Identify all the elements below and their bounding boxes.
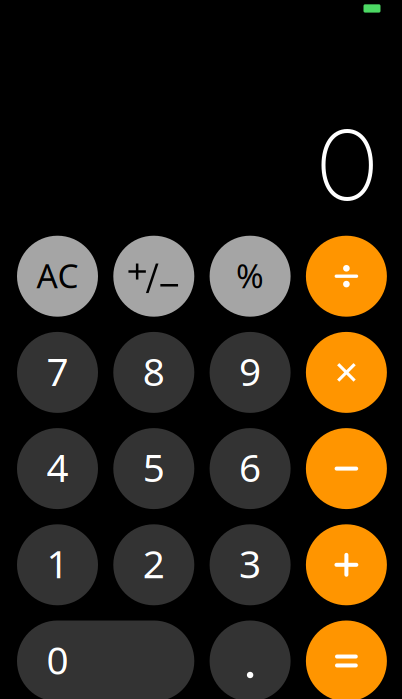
button[interactable]: Multiply xyxy=(306,332,387,413)
staticText: 0 xyxy=(46,634,68,685)
button[interactable]: 3 xyxy=(210,524,291,605)
button[interactable]: Minus xyxy=(306,428,387,509)
button[interactable]: 8 xyxy=(113,332,194,413)
staticText: 4 xyxy=(46,441,68,493)
button[interactable]: 1 xyxy=(17,524,98,605)
button[interactable]: % xyxy=(210,236,291,317)
button[interactable]: 5 xyxy=(113,428,194,509)
staticText: 9 xyxy=(239,345,261,396)
staticText: 6 xyxy=(239,441,261,493)
staticText: 3 xyxy=(239,538,261,589)
staticText: 5 xyxy=(143,441,165,493)
button[interactable]: Toggle sign xyxy=(113,236,194,317)
staticText: 2 xyxy=(143,538,165,589)
button[interactable]: Plus xyxy=(306,524,387,605)
staticText: AC xyxy=(36,253,78,297)
button[interactable]: 7 xyxy=(17,332,98,413)
staticText: 1 xyxy=(46,538,68,589)
button[interactable]: 9 xyxy=(210,332,291,413)
button[interactable]: 2 xyxy=(113,524,194,605)
button[interactable]: 0 xyxy=(17,620,194,699)
button[interactable]: Decimal point xyxy=(210,620,291,699)
button[interactable]: Equals xyxy=(306,620,387,699)
button[interactable]: AC xyxy=(17,236,98,317)
staticText: 8 xyxy=(143,345,165,396)
button[interactable]: 6 xyxy=(210,428,291,509)
staticText: % xyxy=(236,253,264,297)
button[interactable]: 4 xyxy=(17,428,98,509)
staticText: 7 xyxy=(46,345,68,396)
button[interactable]: Divide xyxy=(306,236,387,317)
